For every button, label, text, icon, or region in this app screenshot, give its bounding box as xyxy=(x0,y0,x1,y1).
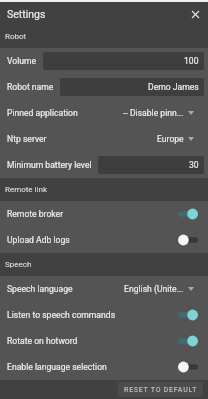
staticText: Demo James xyxy=(148,82,199,92)
button[interactable]: RESET TO DEFAULT xyxy=(118,382,203,397)
staticText: Robot name xyxy=(7,82,54,92)
staticText: Remote link xyxy=(5,185,47,194)
button[interactable]: Ntp server xyxy=(0,126,208,152)
staticText: Speech language xyxy=(7,284,73,294)
staticText: RESET TO DEFAULT xyxy=(124,386,198,394)
staticText: Volume xyxy=(7,56,37,66)
button[interactable]: Enable language selection xyxy=(0,354,208,380)
staticText: Upload Adb logs xyxy=(7,235,70,245)
staticText: Enable language selection xyxy=(7,362,107,372)
staticText: 30 xyxy=(189,160,199,170)
button[interactable]: Robot name xyxy=(0,74,208,100)
staticText: Settings xyxy=(7,8,46,20)
staticText: Robot xyxy=(5,32,27,41)
button[interactable]: Pinned application xyxy=(0,100,208,126)
button[interactable]: Listen to speech commands xyxy=(0,302,208,328)
staticText: Europe xyxy=(157,134,184,144)
button[interactable]: Volume xyxy=(0,48,208,74)
staticText: Listen to speech commands xyxy=(7,310,116,320)
button[interactable]: Rotate on hotword xyxy=(0,328,208,354)
staticText: English (Unite... xyxy=(124,284,184,294)
staticText: Ntp server xyxy=(7,134,47,144)
staticText: Minimum battery level xyxy=(7,160,92,170)
staticText: -- Disable pinn... xyxy=(123,108,184,118)
button[interactable]: Minimum battery level xyxy=(0,152,208,178)
button[interactable]: Speech language xyxy=(0,276,208,302)
button[interactable]: Upload Adb logs xyxy=(0,227,208,253)
staticText: 100 xyxy=(184,56,199,66)
button[interactable]: Remote broker xyxy=(0,201,208,227)
staticText: Speech xyxy=(5,260,32,269)
button[interactable]: Close xyxy=(188,7,202,21)
staticText: Rotate on hotword xyxy=(7,336,78,346)
staticText: Remote broker xyxy=(7,209,64,219)
staticText: Pinned application xyxy=(7,108,78,118)
